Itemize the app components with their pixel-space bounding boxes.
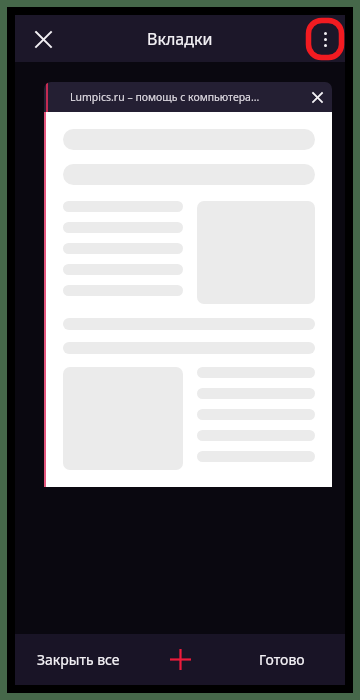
button[interactable]: Закрыть все [15,634,141,685]
staticText: Вкладки [147,28,213,50]
button[interactable] [46,112,332,487]
button[interactable]: Close tab [302,82,332,112]
button[interactable]: Готово [219,634,345,685]
button[interactable]: More options [312,26,338,52]
button[interactable]: Close [23,19,63,59]
staticText: Готово [259,650,305,669]
button[interactable]: Lumpics.ru – помощь с компьютера… [44,82,332,112]
staticText: Закрыть все [37,650,120,669]
staticText: Lumpics.ru – помощь с компьютера… [70,90,296,104]
button[interactable]: New tab [141,634,219,685]
